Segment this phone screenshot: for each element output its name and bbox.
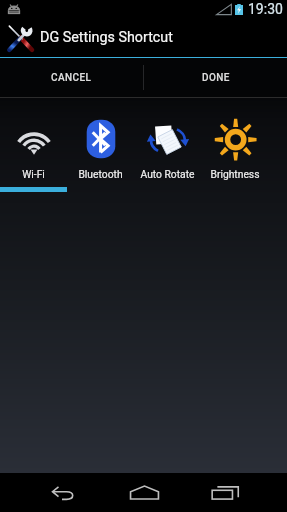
button[interactable]: Bluetooth: [67, 98, 134, 194]
button[interactable]: Back: [34, 473, 92, 512]
button[interactable]: Wi-Fi: [0, 98, 67, 194]
button[interactable]: DONE: [144, 58, 287, 97]
staticText: 19:30: [248, 1, 283, 17]
staticText: Wi-Fi: [22, 168, 45, 180]
staticText: Brightness: [210, 168, 260, 180]
staticText: DONE: [202, 72, 230, 84]
button[interactable]: Brightness: [201, 98, 268, 194]
button[interactable]: Auto Rotate: [134, 98, 201, 194]
button[interactable]: CANCEL: [0, 58, 143, 97]
staticText: Bluetooth: [78, 168, 123, 180]
staticText: CANCEL: [51, 72, 92, 84]
staticText: Auto Rotate: [140, 168, 195, 180]
button[interactable]: Home: [115, 473, 173, 512]
staticText: DG Settings Shortcut: [40, 29, 173, 46]
button[interactable]: Recent apps: [196, 473, 254, 512]
